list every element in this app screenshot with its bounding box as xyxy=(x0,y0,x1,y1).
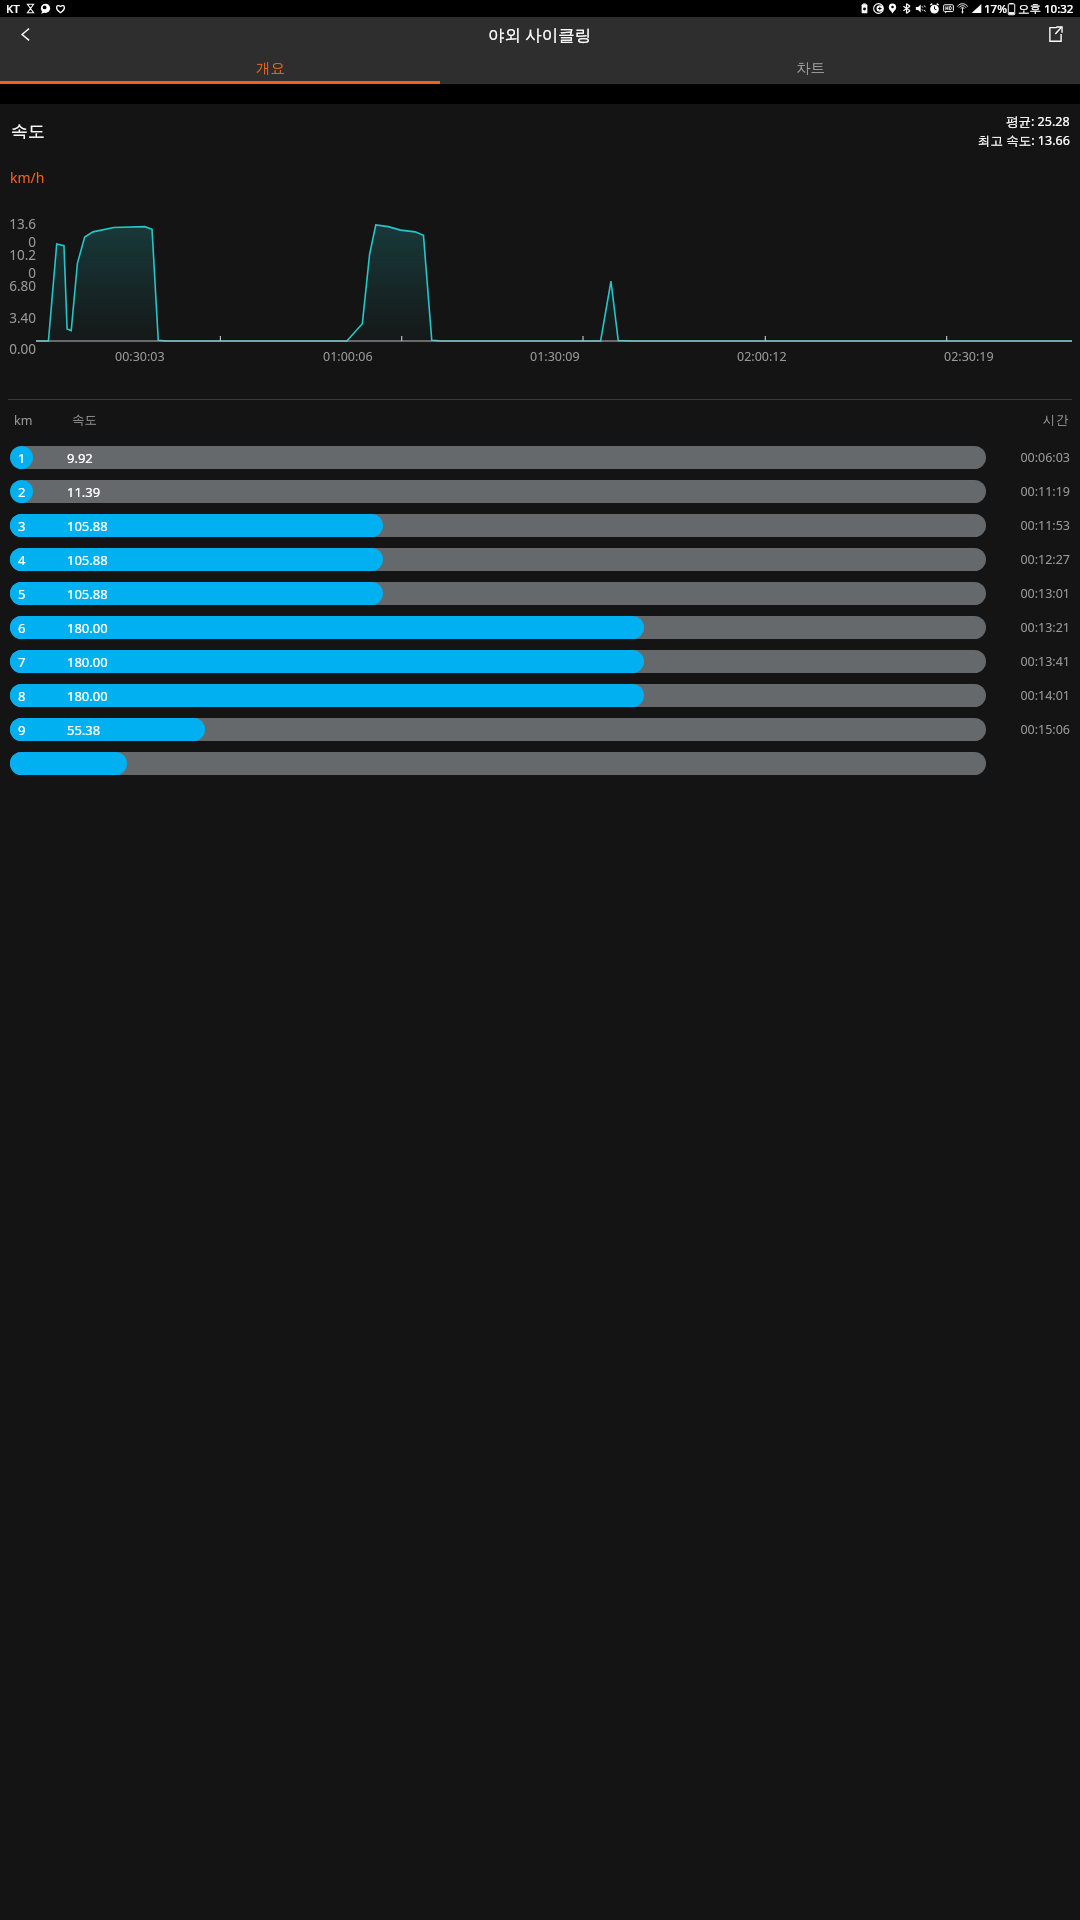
staticText: 180.00 xyxy=(67,653,108,671)
staticText: 시간 xyxy=(1043,412,1068,428)
staticText: 01:30:09 xyxy=(530,348,580,365)
staticText: 8 xyxy=(18,687,26,705)
staticText: 00:11:19 xyxy=(998,483,1070,500)
staticText: 105.88 xyxy=(67,517,108,535)
staticText: 00:30:03 xyxy=(115,348,165,365)
staticText: 01:00:06 xyxy=(323,348,373,365)
staticText: 속도 xyxy=(11,121,45,142)
staticText: 55.38 xyxy=(67,721,101,739)
button[interactable] xyxy=(0,746,1080,780)
staticText: 3.40 xyxy=(4,309,36,327)
button[interactable]: 4 xyxy=(0,542,1080,576)
staticText: km/h xyxy=(10,168,45,187)
staticText: 6.80 xyxy=(4,277,36,295)
button[interactable]: 개요 xyxy=(0,51,540,84)
staticText: km xyxy=(14,412,33,429)
staticText: 00:14:01 xyxy=(998,687,1070,704)
staticText: 13.60 xyxy=(4,215,36,251)
button[interactable]: 8 xyxy=(0,678,1080,712)
button[interactable]: 차트 xyxy=(540,51,1080,84)
staticText: 11.39 xyxy=(67,483,101,501)
staticText: 2 xyxy=(18,483,26,501)
button[interactable]: 6 xyxy=(0,610,1080,644)
staticText: 9 xyxy=(18,721,26,739)
staticText: 180.00 xyxy=(67,619,108,637)
staticText: 105.88 xyxy=(67,585,108,603)
staticText: 02:00:12 xyxy=(737,348,787,365)
staticText: 00:13:41 xyxy=(998,653,1070,670)
staticText: 00:12:27 xyxy=(998,551,1070,568)
staticText: 속도 xyxy=(72,412,97,428)
staticText: 00:13:21 xyxy=(998,619,1070,636)
staticText: 9.92 xyxy=(67,449,93,467)
staticText: 00:15:06 xyxy=(998,721,1070,738)
staticText: 오후 10:32 xyxy=(1018,1,1074,17)
staticText: 00:06:03 xyxy=(998,449,1070,466)
staticText: 00:11:53 xyxy=(998,517,1070,534)
staticText: 평균: 25.28 xyxy=(1006,113,1070,130)
staticText: 00:13:01 xyxy=(998,585,1070,602)
staticText: 105.88 xyxy=(67,551,108,569)
button[interactable]: 2 xyxy=(0,474,1080,508)
staticText: 10.20 xyxy=(4,246,36,282)
button[interactable]: 1 xyxy=(0,440,1080,474)
staticText: 7 xyxy=(18,653,26,671)
button[interactable]: Back xyxy=(8,17,42,51)
staticText: 야외 사이클링 xyxy=(488,23,592,46)
staticText: 02:30:19 xyxy=(944,348,994,365)
staticText: 1 xyxy=(18,449,26,467)
staticText: 차트 xyxy=(796,59,825,77)
staticText: 3 xyxy=(18,517,26,535)
button[interactable]: 3 xyxy=(0,508,1080,542)
staticText: 0.00 xyxy=(4,340,36,358)
staticText: 5 xyxy=(18,585,26,603)
staticText: 4 xyxy=(18,551,26,569)
staticText: 180.00 xyxy=(67,687,108,705)
staticText: 개요 xyxy=(256,59,285,77)
button[interactable]: 9 xyxy=(0,712,1080,746)
staticText: KT xyxy=(6,1,20,17)
staticText: 6 xyxy=(18,619,26,637)
staticText: 17% xyxy=(984,1,1007,17)
button[interactable]: 5 xyxy=(0,576,1080,610)
button[interactable]: Share xyxy=(1038,17,1072,51)
staticText: 최고 속도: 13.66 xyxy=(978,132,1070,149)
button[interactable]: 7 xyxy=(0,644,1080,678)
